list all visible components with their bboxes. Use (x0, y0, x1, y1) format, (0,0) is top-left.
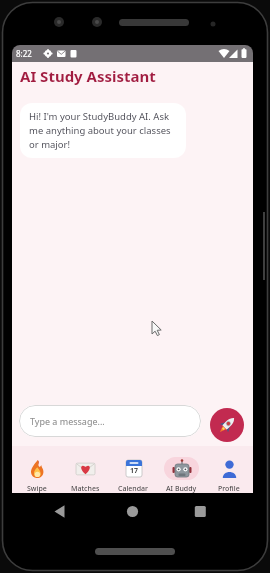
button[interactable]: Matches (61, 446, 109, 493)
button[interactable]: AI Buddy (157, 446, 205, 493)
staticText: Calendar (118, 484, 149, 493)
staticText: Matches (71, 484, 100, 493)
staticText: 8:22 (16, 48, 32, 59)
staticText: 17 (130, 466, 139, 476)
button[interactable]: Swipe (12, 446, 61, 493)
staticText: AI Study Assistant (20, 66, 156, 86)
button[interactable]: 17 (109, 446, 157, 493)
button[interactable] (210, 408, 244, 442)
staticText: Swipe (27, 484, 47, 493)
button[interactable]: Profile (205, 446, 253, 493)
button[interactable]: Type a message... (19, 405, 201, 437)
staticText: AI Buddy (166, 484, 197, 493)
staticText: Hi! I'm your StudyBuddy AI. Ask me anyth… (29, 110, 171, 151)
staticText: Type a message... (30, 415, 105, 427)
staticText: Profile (218, 484, 240, 493)
